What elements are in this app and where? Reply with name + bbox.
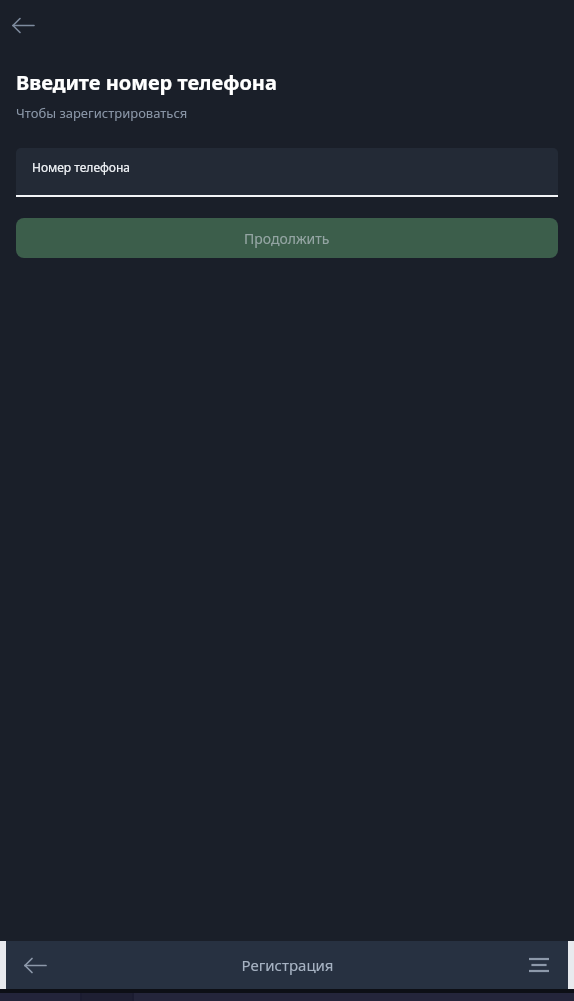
staticText: Чтобы зарегистрироваться: [16, 104, 188, 122]
button[interactable]: Номер телефона: [16, 148, 558, 197]
button[interactable]: Назад: [6, 8, 40, 42]
staticText: Продолжить: [244, 229, 330, 248]
button[interactable]: Продолжить: [16, 218, 558, 258]
staticText: Номер телефона: [32, 159, 131, 175]
staticText: Регистрация: [241, 955, 334, 975]
button[interactable]: Меню: [518, 944, 560, 986]
button[interactable]: Назад: [14, 944, 56, 986]
staticText: Введите номер телефона: [16, 69, 277, 96]
